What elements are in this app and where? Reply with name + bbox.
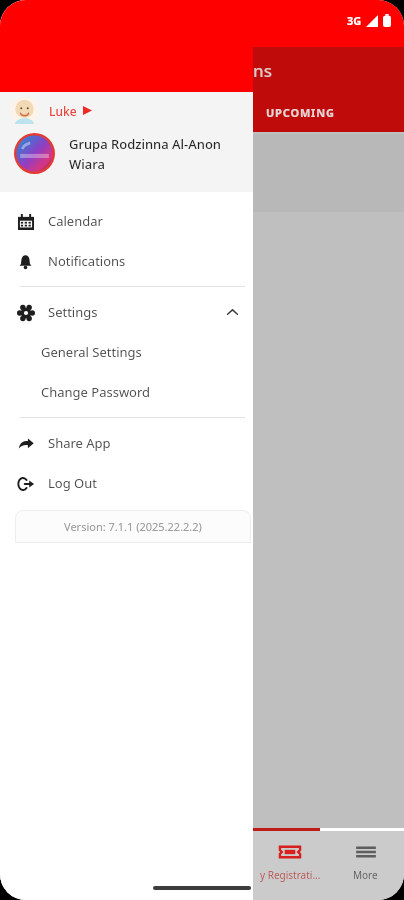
- staticText: Settings: [48, 303, 98, 321]
- button[interactable]: Log Out: [0, 463, 253, 503]
- staticText: ns: [253, 59, 272, 82]
- staticText: Luke: [49, 103, 77, 119]
- staticText: Log Out: [48, 474, 97, 492]
- button[interactable]: Grupa Rodzinna Al-Anon Wiara: [0, 129, 253, 192]
- staticText: Change Password: [41, 383, 151, 401]
- staticText: General Settings: [41, 343, 142, 361]
- staticText: 3G: [347, 13, 362, 28]
- button[interactable]: Change Password: [0, 372, 253, 412]
- button[interactable]: Share App: [0, 423, 253, 463]
- button[interactable]: Settings: [0, 292, 253, 332]
- staticText: UPCOMING: [266, 105, 335, 120]
- staticText: Calendar: [48, 212, 103, 230]
- other: y Registrati...: [278, 840, 302, 864]
- staticText: y Registrati...: [260, 868, 321, 882]
- button[interactable]: y Registrati...: [253, 831, 327, 900]
- other: More: [354, 840, 378, 864]
- button[interactable]: General Settings: [0, 332, 253, 372]
- staticText: Version: 7.1.1 (2025.22.2.2): [64, 519, 202, 534]
- button[interactable]: Calendar: [0, 201, 253, 241]
- button[interactable]: More: [327, 831, 404, 900]
- button[interactable]: Notifications: [0, 241, 253, 281]
- staticText: Grupa Rodzinna Al-Anon Wiara: [69, 135, 239, 173]
- button[interactable]: Luke: [0, 92, 253, 129]
- staticText: Notifications: [48, 252, 126, 270]
- staticText: More: [353, 868, 378, 882]
- staticText: Share App: [48, 434, 111, 452]
